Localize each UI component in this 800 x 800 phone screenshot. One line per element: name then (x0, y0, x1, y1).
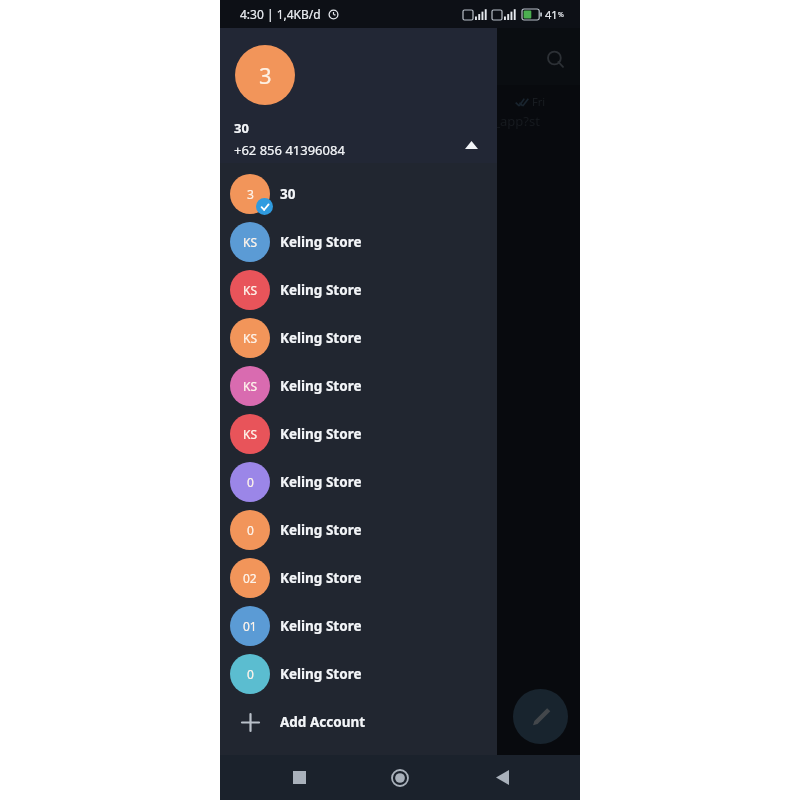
staticText: Keling Store (280, 569, 362, 587)
staticText: % (558, 10, 564, 20)
staticText: Add Account (280, 713, 366, 731)
staticText: Keling Store (280, 281, 362, 299)
staticText: KS (243, 330, 258, 346)
button[interactable]: 3 (220, 28, 497, 163)
staticText: KS (243, 378, 258, 394)
staticText: Keling Store (280, 425, 362, 443)
button[interactable]: 0 (220, 506, 497, 554)
staticText: 02 (243, 570, 257, 586)
staticText: Keling Store (280, 473, 362, 491)
button[interactable]: 01 (220, 602, 497, 650)
staticText: Keling Store (280, 377, 362, 395)
button[interactable]: Back (479, 755, 525, 800)
staticText: Fri (532, 94, 546, 109)
button[interactable]: 0 (220, 650, 497, 698)
staticText: 01 (243, 618, 257, 634)
button[interactable]: Add Account (220, 698, 497, 746)
staticText: KS (243, 282, 258, 298)
button[interactable]: Compose new message (513, 689, 568, 744)
staticText: +62 856 41396084 (234, 141, 345, 159)
staticText: Keling Store (280, 665, 362, 683)
staticText: 30 (280, 185, 296, 203)
staticText: 3 (259, 60, 272, 90)
button[interactable]: 02 (220, 554, 497, 602)
button[interactable]: KS (220, 314, 497, 362)
staticText: KS (243, 426, 258, 442)
button[interactable]: KS (220, 266, 497, 314)
button[interactable]: KS (220, 410, 497, 458)
button[interactable]: Collapse account list (457, 131, 485, 159)
button[interactable]: Home (377, 755, 423, 800)
staticText: KS (243, 234, 258, 250)
staticText: Keling Store (280, 521, 362, 539)
button[interactable]: Recent apps (276, 755, 322, 800)
staticText: 0 (247, 522, 254, 538)
button[interactable]: Search (536, 40, 576, 80)
staticText: Keling Store (280, 233, 362, 251)
staticText: Keling Store (280, 329, 362, 347)
staticText: 3 (247, 186, 254, 202)
staticText: 0 (247, 666, 254, 682)
staticText: Keling Store (280, 617, 362, 635)
button[interactable]: KS (220, 362, 497, 410)
staticText: 0 (247, 474, 254, 490)
staticText: 41 (545, 7, 558, 22)
staticText: oin_app?st (475, 112, 540, 130)
button[interactable]: KS (220, 218, 497, 266)
button[interactable]: 3 (220, 170, 497, 218)
button[interactable]: 0 (220, 458, 497, 506)
staticText: 4:30 | 1,4KB/d (240, 6, 321, 22)
staticText: 30 (234, 119, 249, 137)
